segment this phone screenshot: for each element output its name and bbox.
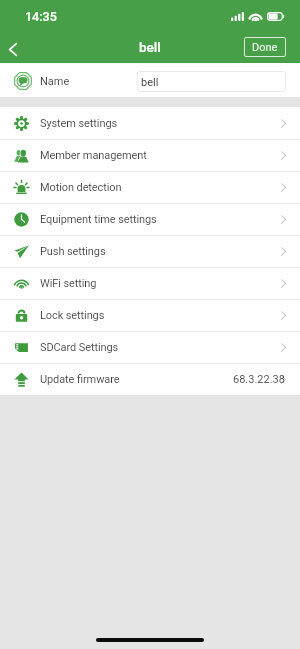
staticText: WiFi setting [40,277,97,290]
button[interactable]: Lock settings [0,299,300,331]
button[interactable]: Push settings [0,235,300,267]
button[interactable]: Update firmware [0,363,300,395]
button[interactable]: SDCard Settings [0,331,300,363]
staticText: System settings [40,117,118,130]
button[interactable]: Done [244,37,286,57]
staticText: Motion detection [40,181,122,194]
staticText: Name [40,75,70,88]
staticText: 68.3.22.38 [233,373,285,386]
button[interactable]: Back [0,28,26,63]
staticText: bell [139,39,161,55]
staticText: Member management [40,149,147,162]
staticText: 14:35 [25,9,57,24]
staticText: Done [252,41,278,54]
staticText: SDCard Settings [40,341,119,354]
staticText: Push settings [40,245,106,258]
button[interactable]: Motion detection [0,171,300,203]
button[interactable]: Equipment time settings [0,203,300,235]
button[interactable]: Member management [0,139,300,171]
button[interactable]: System settings [0,107,300,139]
button[interactable]: WiFi setting [0,267,300,299]
staticText: Update firmware [40,373,120,386]
staticText: Equipment time settings [40,213,157,226]
staticText: Lock settings [40,309,105,322]
staticText: bell [141,76,159,89]
